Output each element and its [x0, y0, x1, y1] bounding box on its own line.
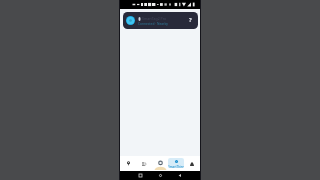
button[interactable]: Devices: [184, 156, 200, 171]
button[interactable]: Location: [120, 156, 136, 171]
staticText: SmartTag2 Pro: [142, 16, 167, 21]
button[interactable]: Home: [157, 172, 164, 179]
button[interactable]: Help: [187, 16, 193, 22]
staticText: SmartThings: [168, 165, 184, 168]
button[interactable]: Back: [176, 172, 183, 179]
staticText: ?: [189, 16, 192, 22]
staticText: Connected · Nearby: [138, 22, 168, 26]
button[interactable]: Profile: [152, 156, 168, 171]
button[interactable]: History: [136, 156, 152, 171]
button[interactable]: SmartTag2 Pro: [123, 12, 198, 29]
button[interactable]: Navigate: [168, 156, 184, 171]
button[interactable]: Recents: [137, 172, 144, 179]
